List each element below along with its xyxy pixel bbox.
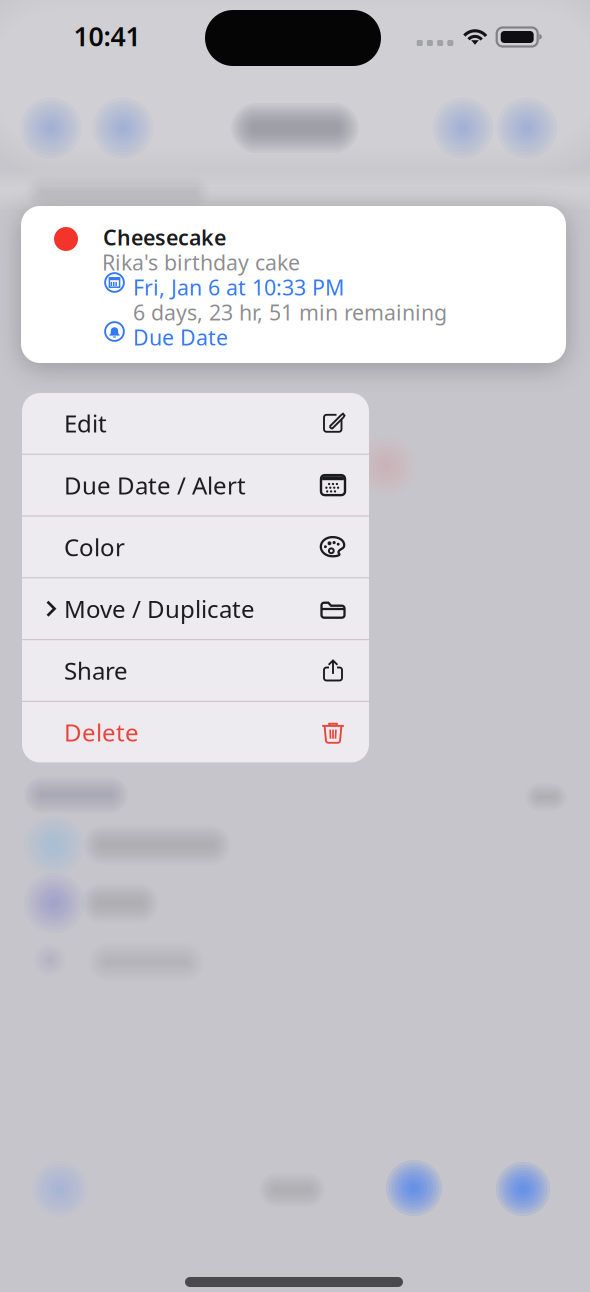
staticText: Rika's birthday cake — [102, 248, 300, 276]
button[interactable]: Cheesecake — [21, 206, 566, 363]
staticText: Due Date — [133, 323, 228, 351]
button[interactable]: Edit — [22, 393, 369, 454]
button[interactable]: Delete — [22, 702, 369, 763]
staticText: Fri, Jan 6 at 10:33 PM — [133, 273, 344, 301]
staticText: 6 days, 23 hr, 51 min remaining — [133, 298, 447, 326]
staticText: Share — [64, 655, 128, 686]
button[interactable]: Color — [22, 517, 369, 577]
staticText: 10:41 — [73, 18, 140, 54]
staticText: Due Date / Alert — [64, 469, 246, 501]
staticText: Move / Duplicate — [64, 593, 255, 625]
button[interactable]: Due Date / Alert — [22, 455, 369, 515]
button[interactable]: Move / Duplicate — [22, 578, 369, 639]
button[interactable]: Share — [22, 640, 369, 701]
staticText: Cheesecake — [103, 223, 226, 251]
staticText: Edit — [64, 407, 107, 439]
staticText: Delete — [64, 716, 139, 748]
staticText: Color — [64, 531, 125, 563]
